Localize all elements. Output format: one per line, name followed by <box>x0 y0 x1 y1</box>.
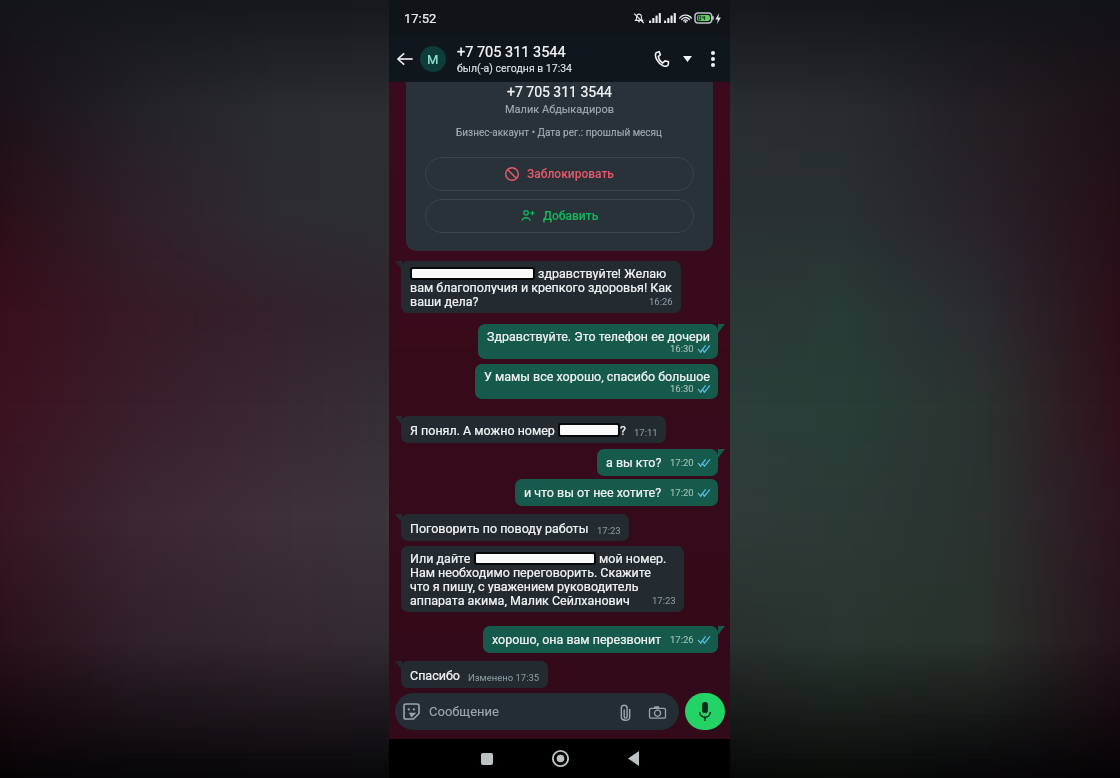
staticText: ? <box>620 423 626 437</box>
staticText: 16:26 <box>649 296 673 307</box>
button[interactable]: здравствуйте! Желаю <box>401 261 681 313</box>
button[interactable]: Contact photo <box>420 46 446 72</box>
staticText: M <box>427 52 439 67</box>
staticText: мой номер. <box>596 551 667 565</box>
staticText: ваши дела? <box>410 294 479 308</box>
staticText: +7 705 311 3544 <box>457 44 566 61</box>
staticText: хорошо, она вам перезвонит <box>492 632 662 647</box>
staticText: и что вы от нее хотите? <box>524 485 662 500</box>
staticText: Изменено 17:35 <box>468 672 540 683</box>
staticText: Или дайте <box>410 551 474 565</box>
staticText: Я понял. А можно номер <box>410 423 558 437</box>
button[interactable]: +7 705 311 3544 <box>406 82 713 251</box>
staticText: 17:11 <box>634 427 658 438</box>
staticText: У мамы все хорошо, спасибо большое <box>484 369 710 383</box>
button[interactable]: и что вы от нее хотите? <box>515 479 718 506</box>
button[interactable]: Или дайте <box>401 546 684 612</box>
button[interactable]: Заблокировать <box>425 157 694 191</box>
staticText: 17:20 <box>670 487 694 498</box>
staticText: 17:52 <box>404 11 437 26</box>
button[interactable]: Добавить <box>425 199 694 233</box>
button[interactable]: Camera <box>647 702 667 722</box>
button[interactable]: Поговорить по поводу работы <box>401 514 629 541</box>
button[interactable]: хорошо, она вам перезвонит <box>483 626 718 653</box>
staticText: был(-а) сегодня в 17:34 <box>457 62 573 74</box>
staticText: 17:26 <box>670 634 694 645</box>
staticText: +7 705 311 3544 <box>507 84 612 100</box>
button[interactable]: Record voice message <box>685 693 725 730</box>
staticText: вам благополучия и крепкого здоровья! Ка… <box>410 280 672 294</box>
staticText: что я пишу, с уважением руководитель <box>410 579 639 593</box>
button[interactable]: У мамы все хорошо, спасибо большое <box>475 364 718 399</box>
button[interactable]: Attach file <box>615 702 635 722</box>
staticText: 17:20 <box>670 457 694 468</box>
button[interactable]: Recent apps <box>467 739 507 778</box>
button[interactable]: More options <box>700 36 726 82</box>
staticText: 16:30 <box>670 383 694 394</box>
button[interactable]: Сообщение <box>395 693 679 730</box>
staticText: здравствуйте! Желаю <box>535 266 667 280</box>
button[interactable]: Back <box>392 36 418 82</box>
staticText: Заблокировать <box>527 167 614 181</box>
button[interactable]: Home <box>540 739 580 778</box>
button[interactable]: Здравствуйте. Это телефон ее дочери <box>478 324 718 359</box>
staticText: Добавить <box>543 209 599 223</box>
staticText: Сообщение <box>429 704 615 719</box>
staticText: Нам необходимо переговорить. Скажите <box>410 565 651 579</box>
staticText: а вы кто? <box>606 455 662 470</box>
button[interactable]: Call <box>647 45 675 73</box>
staticText: Поговорить по поводу работы <box>410 521 589 535</box>
staticText: 17:23 <box>597 525 621 536</box>
staticText: Здравствуйте. Это телефон ее дочери <box>487 329 710 343</box>
button[interactable]: Спасибо <box>401 661 548 688</box>
staticText: аппарата акима, Малик Сейлханович <box>410 593 630 607</box>
button[interactable]: Call options <box>678 50 696 68</box>
button[interactable]: Back <box>613 739 653 778</box>
staticText: 17:23 <box>652 595 676 606</box>
staticText: 16:30 <box>670 343 694 354</box>
button[interactable]: а вы кто? <box>597 449 718 476</box>
staticText: Бизнес-аккаунт • Дата рег.: прошлый меся… <box>456 127 663 139</box>
staticText: Малик Абдыкадиров <box>505 103 614 116</box>
staticText: Спасибо <box>410 668 460 682</box>
button[interactable]: Я понял. А можно номер <box>401 416 666 443</box>
